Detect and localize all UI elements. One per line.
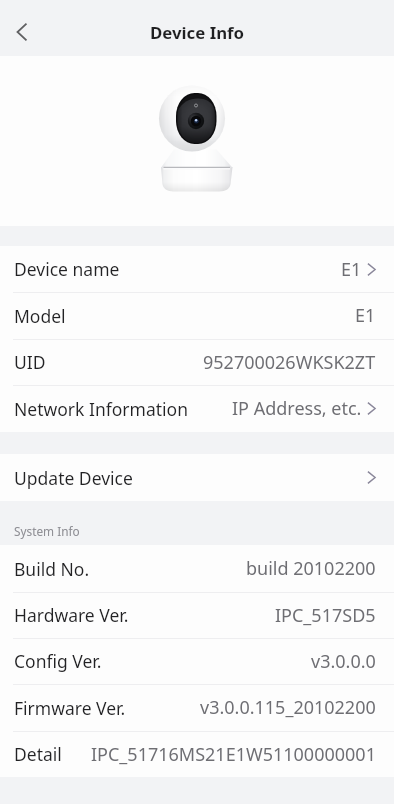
staticText: IP Address, etc.: [232, 396, 362, 421]
staticText: IPC_517SD5: [275, 603, 376, 628]
staticText: UID: [14, 350, 46, 374]
staticText: Hardware Ver.: [14, 603, 129, 627]
button[interactable]: Firmware Ver.: [0, 684, 394, 731]
button[interactable]: Hardware Ver.: [0, 592, 394, 638]
button[interactable]: Network Information: [0, 385, 394, 432]
button[interactable]: Back: [0, 10, 44, 54]
staticText: v3.0.0.0: [311, 649, 376, 674]
staticText: Device name: [14, 257, 120, 281]
button[interactable]: Detail: [0, 731, 394, 777]
staticText: build 20102200: [246, 556, 376, 581]
staticText: 952700026WKSK2ZT: [203, 350, 376, 375]
staticText: Model: [14, 304, 66, 328]
staticText: E1: [355, 303, 376, 328]
button[interactable]: Device name: [0, 246, 394, 292]
staticText: Config Ver.: [14, 649, 102, 673]
button[interactable]: UID: [0, 339, 394, 385]
staticText: v3.0.0.115_20102200: [200, 695, 376, 720]
button[interactable]: Update Device: [0, 454, 394, 501]
staticText: Network Information: [14, 397, 188, 421]
staticText: IPC_51716MS21E1W51100000001: [91, 742, 376, 767]
button[interactable]: Build No.: [0, 545, 394, 592]
staticText: Firmware Ver.: [14, 696, 126, 720]
staticText: E1: [341, 257, 362, 282]
button[interactable]: Config Ver.: [0, 638, 394, 684]
staticText: Device Info: [150, 21, 245, 44]
staticText: Detail: [14, 742, 62, 766]
button[interactable]: Model: [0, 292, 394, 339]
staticText: Build No.: [14, 557, 90, 581]
staticText: Update Device: [14, 466, 133, 490]
staticText: System Info: [14, 523, 80, 539]
